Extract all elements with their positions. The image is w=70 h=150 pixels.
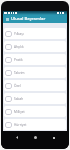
staticText: Ulusal Bayramlar: [11, 16, 46, 22]
staticText: Özel: [14, 84, 21, 88]
button[interactable]: Yılbaşı: [4, 28, 66, 39]
button[interactable]: Ahçılık: [4, 41, 66, 52]
staticText: Takvim: [14, 71, 25, 75]
staticText: Yılbaşı: [14, 32, 24, 36]
staticText: Milliyet: [14, 110, 25, 114]
button[interactable]: Hürriyet: [4, 119, 66, 130]
button[interactable]: Back: [13, 134, 20, 141]
staticText: Ahçılık: [14, 45, 24, 49]
button[interactable]: Home: [32, 134, 39, 141]
button[interactable]: Özel: [4, 80, 66, 91]
button[interactable]: Sabah: [4, 93, 66, 104]
button[interactable]: Milliyet: [4, 106, 66, 117]
staticText: Hürriyet: [14, 123, 27, 127]
button[interactable]: Recent apps: [50, 134, 57, 141]
button[interactable]: Takvim: [4, 67, 66, 78]
button[interactable]: Pratik: [4, 54, 66, 65]
staticText: Pratik: [14, 58, 23, 62]
staticText: Sabah: [14, 97, 24, 101]
button[interactable]: Open navigation menu: [3, 15, 11, 23]
